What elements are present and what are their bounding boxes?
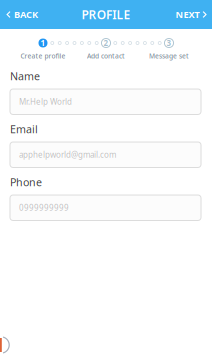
button[interactable]: 0999999999 — [10, 195, 201, 220]
staticText: Email — [10, 122, 38, 136]
button[interactable]: NEXT — [167, 0, 212, 29]
staticText: Name — [10, 69, 40, 83]
staticText: Phone — [10, 175, 42, 189]
staticText: BACK — [14, 8, 38, 21]
staticText: Mr.Help World — [19, 96, 72, 107]
button[interactable]: apphelpworld@gmail.com — [10, 142, 201, 167]
staticText: apphelpworld@gmail.com — [19, 149, 116, 160]
staticText: NEXT — [175, 8, 199, 21]
staticText: PROFILE — [81, 6, 131, 22]
staticText: Create profile — [20, 52, 65, 60]
button[interactable]: BACK — [0, 0, 46, 29]
staticText: 0999999999 — [19, 202, 69, 213]
staticText: 3 — [166, 38, 171, 48]
button[interactable]: Mr.Help World — [10, 89, 201, 114]
staticText: Message set — [149, 52, 189, 60]
staticText: 1 — [40, 38, 45, 48]
button[interactable]: Help — [0, 336, 11, 354]
staticText: 2 — [103, 38, 108, 48]
staticText: Add contact — [87, 52, 125, 60]
